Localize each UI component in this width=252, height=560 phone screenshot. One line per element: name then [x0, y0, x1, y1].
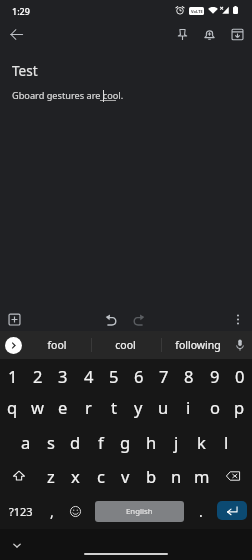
button[interactable]: a [13, 425, 38, 459]
staticText: w [31, 396, 44, 418]
staticText: m [194, 465, 210, 487]
button[interactable]: 6 [126, 359, 151, 393]
button[interactable]: Redo [129, 309, 149, 330]
staticText: r [85, 396, 92, 418]
button[interactable]: Backspace [214, 459, 252, 493]
button[interactable]: k [189, 425, 214, 459]
button[interactable]: u [151, 390, 176, 424]
button[interactable]: x [63, 459, 88, 493]
staticText: VoLTE [191, 9, 203, 14]
staticText: English [126, 506, 153, 517]
staticText: z [47, 465, 55, 487]
button[interactable]: 7 [151, 359, 176, 393]
staticText: i [186, 396, 191, 418]
button[interactable]: t [101, 390, 126, 424]
button[interactable]: d [63, 425, 88, 459]
staticText: k [197, 431, 206, 453]
staticText: , [50, 502, 54, 521]
staticText: . [199, 502, 203, 521]
staticText: 2 [33, 365, 43, 387]
button[interactable]: Add [4, 309, 25, 330]
staticText: e [58, 396, 68, 418]
staticText: n [171, 465, 182, 487]
staticText: 1 [8, 365, 18, 387]
button[interactable]: 0 [227, 359, 252, 393]
button[interactable]: . [191, 494, 211, 528]
staticText: 6 [134, 365, 144, 387]
button[interactable]: Voice input [232, 335, 248, 355]
button[interactable]: fool [28, 331, 85, 359]
button[interactable]: Shift [0, 459, 38, 493]
button[interactable]: Hide keyboard [9, 538, 24, 552]
staticText: x [71, 465, 80, 487]
button[interactable]: m [189, 459, 214, 493]
button[interactable]: b [139, 459, 164, 493]
staticText: 9 [210, 365, 220, 387]
staticText: c [97, 465, 105, 487]
button[interactable]: v [113, 459, 138, 493]
button[interactable]: o [202, 390, 227, 424]
button[interactable]: 9 [202, 359, 227, 393]
staticText: 5 [109, 365, 119, 387]
staticText: 4 [84, 365, 94, 387]
button[interactable]: Pin [170, 22, 194, 46]
button[interactable]: 8 [176, 359, 201, 393]
staticText: a [21, 431, 31, 453]
button[interactable]: c [88, 459, 113, 493]
button[interactable]: 3 [50, 359, 75, 393]
staticText: u [158, 396, 169, 418]
button[interactable]: j [164, 425, 189, 459]
button[interactable]: r [76, 390, 101, 424]
button[interactable]: Reminder [197, 22, 221, 46]
button[interactable]: More options [228, 309, 248, 330]
staticText: 1:29 [12, 5, 30, 17]
button[interactable]: 5 [101, 359, 126, 393]
staticText: ?123 [9, 504, 33, 519]
button[interactable]: w [25, 390, 50, 424]
button[interactable]: 1 [0, 359, 25, 393]
staticText: 7 [159, 365, 169, 387]
staticText: q [7, 396, 18, 418]
button[interactable]: Undo [101, 309, 121, 330]
button[interactable]: 2 [25, 359, 50, 393]
button[interactable]: 4 [76, 359, 101, 393]
button[interactable]: English [95, 501, 184, 522]
button[interactable]: Expand suggestions [5, 337, 22, 354]
button[interactable]: l [214, 425, 239, 459]
button[interactable]: q [0, 390, 25, 424]
button[interactable]: h [139, 425, 164, 459]
button[interactable]: i [176, 390, 201, 424]
button[interactable]: s [38, 425, 63, 459]
staticText: fool [47, 338, 67, 352]
staticText: v [121, 465, 130, 487]
staticText: o [210, 396, 220, 418]
button[interactable]: z [38, 459, 63, 493]
button[interactable]: e [50, 390, 75, 424]
button[interactable]: Back [4, 22, 28, 46]
staticText: Test [12, 62, 38, 80]
staticText: following [175, 338, 221, 352]
button[interactable]: Emoji [64, 494, 86, 528]
button[interactable]: g [113, 425, 138, 459]
button[interactable]: p [227, 390, 252, 424]
staticText: p [234, 396, 245, 418]
staticText: t [111, 396, 117, 418]
staticText: 3 [58, 365, 68, 387]
button[interactable]: , [42, 494, 62, 528]
button[interactable]: y [126, 390, 151, 424]
staticText: l [224, 431, 229, 453]
button[interactable]: n [164, 459, 189, 493]
staticText: h [146, 431, 157, 453]
staticText: 0 [235, 365, 245, 387]
staticText: f [98, 431, 104, 453]
staticText: cool [115, 338, 136, 352]
button[interactable]: ?123 [0, 494, 42, 528]
staticText: b [146, 465, 157, 487]
staticText: Gboard gestures are cool. [12, 89, 124, 102]
button[interactable]: following [162, 331, 233, 359]
button[interactable]: Enter [217, 501, 247, 520]
button[interactable]: cool [92, 331, 159, 359]
button[interactable]: Archive [225, 22, 249, 46]
button[interactable]: f [88, 425, 113, 459]
staticText: g [120, 431, 131, 453]
